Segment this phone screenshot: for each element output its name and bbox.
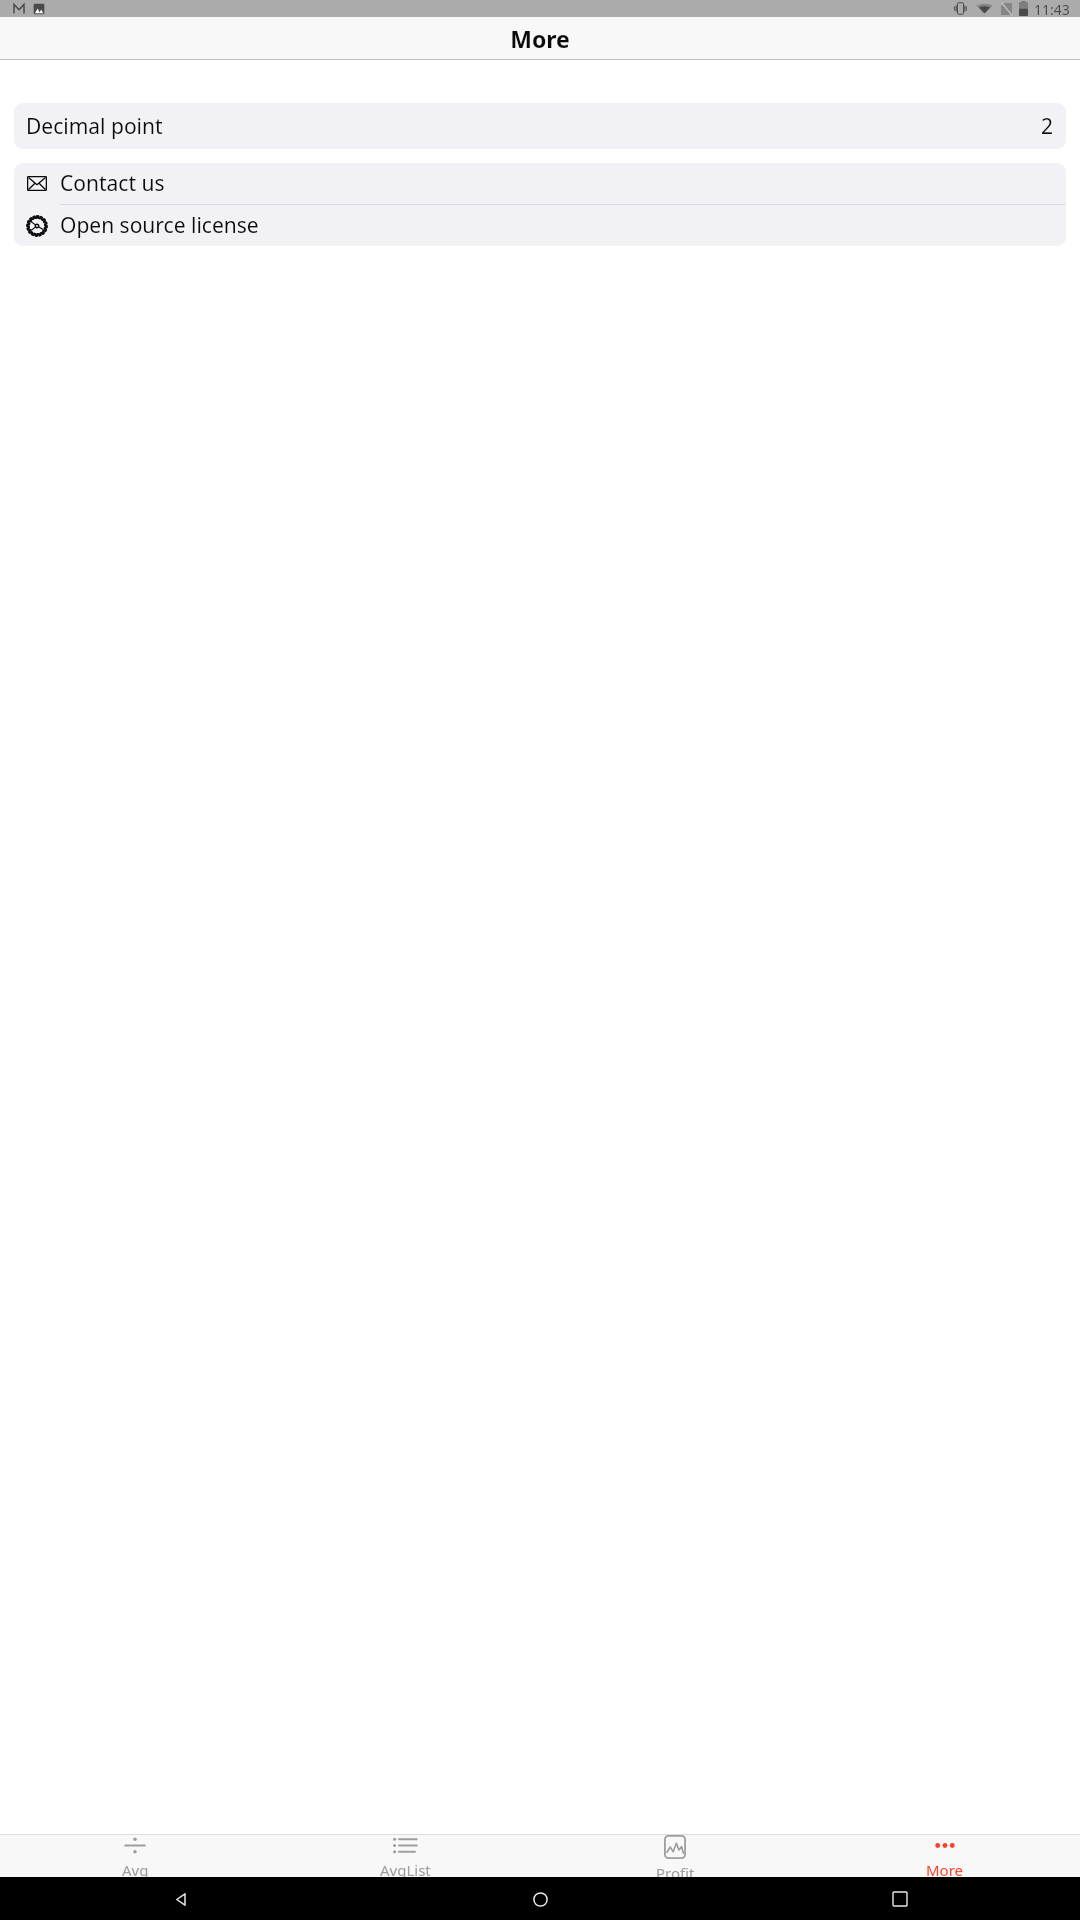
staticText: Decimal point [26, 112, 163, 141]
staticText: Open source license [60, 211, 259, 240]
other: Open source license [27, 216, 47, 236]
staticText: 2 [1041, 112, 1054, 141]
button[interactable]: AvgList [270, 1835, 540, 1877]
button[interactable]: Recents [883, 1882, 917, 1916]
other: Contact us [27, 176, 47, 191]
button[interactable]: Home [523, 1882, 557, 1916]
button[interactable]: Back [163, 1882, 197, 1916]
staticText: More [926, 1860, 964, 1877]
button[interactable]: Profit [540, 1835, 810, 1877]
staticText: AvgList [380, 1860, 431, 1877]
button[interactable]: Contact us [14, 163, 1066, 204]
staticText: Avg [122, 1860, 149, 1877]
button[interactable]: Decimal point [14, 103, 1066, 149]
button[interactable]: Open source license [14, 205, 1066, 246]
staticText: Profit [656, 1863, 695, 1877]
button[interactable]: Avg [0, 1835, 270, 1877]
other: More [932, 1835, 958, 1856]
staticText: More [510, 23, 570, 54]
staticText: Contact us [60, 169, 165, 198]
button[interactable]: More [810, 1835, 1080, 1877]
staticText: 11:43 [1034, 0, 1070, 17]
